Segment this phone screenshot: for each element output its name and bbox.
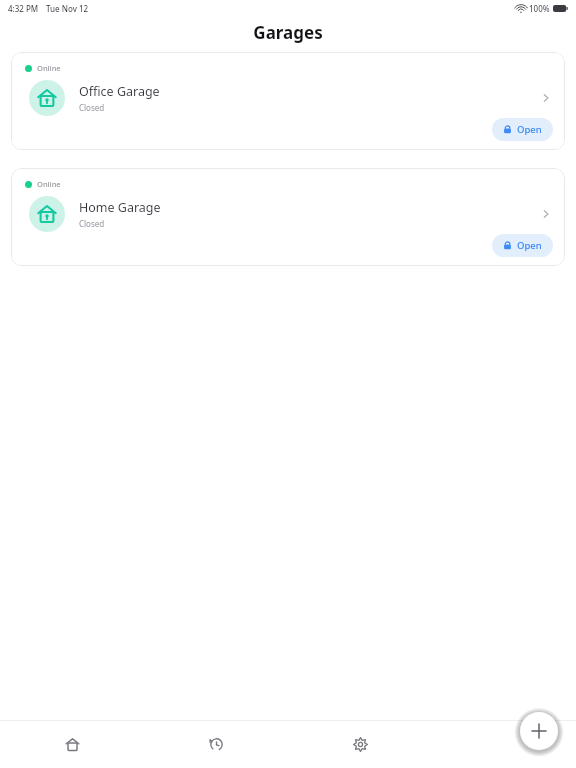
staticText: Closed (79, 102, 105, 113)
button[interactable]: Open (492, 234, 553, 257)
staticText: 4:32 PM (8, 3, 39, 14)
staticText: Office Garage (79, 83, 160, 100)
staticText: Home Garage (79, 199, 161, 216)
staticText: Open (517, 239, 542, 252)
button[interactable]: History (144, 721, 288, 768)
staticText: 100% (529, 3, 550, 14)
button[interactable]: Add garage (520, 712, 558, 750)
button[interactable]: Settings (288, 721, 432, 768)
staticText: Online (37, 63, 61, 73)
staticText: Online (37, 179, 61, 189)
staticText: Closed (79, 218, 105, 229)
staticText: Tue Nov 12 (46, 3, 89, 14)
button[interactable]: Online (11, 52, 565, 150)
button[interactable]: Online (11, 168, 565, 266)
button[interactable]: Home (0, 721, 144, 768)
button[interactable]: Open (492, 118, 553, 141)
staticText: Open (517, 123, 542, 136)
staticText: Garages (253, 21, 323, 44)
